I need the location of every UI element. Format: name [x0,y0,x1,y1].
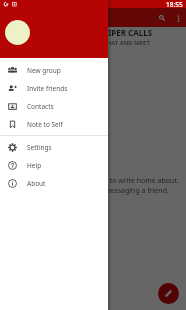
button[interactable]: Settings [0,138,108,156]
staticText: Contacts [27,102,54,111]
staticText: Note to Self [27,120,63,129]
button[interactable]: Invite friends [0,79,108,97]
staticText: CHAT AND MEET [103,39,150,47]
button[interactable]: New message [158,283,179,304]
button[interactable]: New group [0,61,108,79]
button[interactable]: More options [170,10,186,26]
staticText: About [27,179,46,188]
button[interactable]: Contacts [0,97,108,115]
staticText: Try messaging a friend. [92,186,169,196]
button[interactable]: About [0,174,108,192]
staticText: VIPER CALLS [103,27,153,38]
staticText: New group [27,66,61,75]
button[interactable]: Note to Self [0,115,108,133]
staticText: 18:55 [166,0,183,8]
button[interactable]: VIPER CALLS [0,27,186,47]
staticText: Help [27,161,42,170]
staticText: Your nam [4,47,27,54]
button[interactable]: Help [0,156,108,174]
staticText: Invite friends [27,84,68,93]
button[interactable]: Search [154,10,170,26]
staticText: Nothing to write home about. [81,176,179,186]
staticText: Settings [27,143,52,152]
